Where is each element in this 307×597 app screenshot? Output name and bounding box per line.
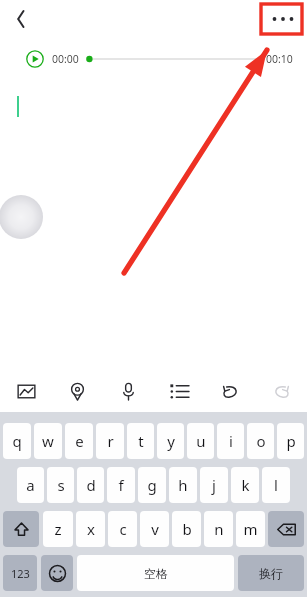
staticText: d [86, 475, 96, 495]
button[interactable]: e [65, 423, 93, 459]
button[interactable]: f [107, 467, 135, 503]
button[interactable]: b [172, 511, 201, 547]
button[interactable]: More options [265, 4, 301, 34]
staticText: u [196, 431, 206, 451]
button[interactable]: Undo [205, 370, 256, 412]
button[interactable]: Play [26, 50, 44, 68]
button[interactable]: Location [52, 370, 103, 412]
button[interactable]: Emoji [41, 555, 73, 591]
button[interactable]: List [154, 370, 205, 412]
button[interactable]: y [157, 423, 184, 459]
button[interactable]: a [17, 467, 44, 503]
staticText: 空格 [144, 566, 168, 581]
button[interactable]: s [47, 467, 74, 503]
staticText: j [212, 475, 216, 495]
staticText: i [229, 431, 233, 451]
button[interactable]: Backspace [268, 511, 304, 547]
staticText: h [178, 475, 188, 495]
button[interactable]: 123 [3, 555, 37, 591]
staticText: c [119, 519, 127, 539]
staticText: p [286, 431, 296, 451]
staticText: l [274, 475, 278, 495]
staticText: s [57, 475, 65, 495]
staticText: v [151, 519, 159, 539]
staticText: a [26, 475, 35, 495]
staticText: k [241, 475, 250, 495]
button[interactable]: j [200, 467, 228, 503]
button[interactable]: h [169, 467, 197, 503]
button[interactable]: Shift [3, 511, 39, 547]
staticText: n [214, 519, 224, 539]
staticText: q [12, 431, 22, 451]
button[interactable]: l [262, 467, 290, 503]
button[interactable]: 换行 [238, 555, 304, 591]
button[interactable]: x [76, 511, 105, 547]
button[interactable]: r [96, 423, 124, 459]
button[interactable]: Redo [256, 370, 307, 412]
staticText: 00:00 [52, 52, 79, 66]
button[interactable]: i [217, 423, 244, 459]
button[interactable]: p [277, 423, 304, 459]
button[interactable]: u [187, 423, 214, 459]
staticText: f [118, 475, 124, 495]
staticText: e [75, 431, 84, 451]
button[interactable]: Insert image [0, 370, 52, 412]
staticText: 123 [11, 566, 30, 581]
button[interactable]: w [34, 423, 62, 459]
staticText: t [138, 431, 144, 451]
staticText: 00:10 [266, 52, 293, 66]
button[interactable]: o [247, 423, 274, 459]
staticText: m [243, 519, 258, 539]
button[interactable]: m [236, 511, 265, 547]
staticText: x [87, 519, 95, 539]
staticText: g [147, 475, 157, 495]
button[interactable]: c [108, 511, 137, 547]
staticText: 换行 [259, 566, 283, 581]
staticText: r [107, 431, 114, 451]
button[interactable]: d [77, 467, 104, 503]
staticText: o [256, 431, 266, 451]
button[interactable]: q [3, 423, 31, 459]
staticText: z [54, 519, 62, 539]
button[interactable]: n [204, 511, 233, 547]
staticText: y [167, 431, 175, 451]
button[interactable]: z [43, 511, 73, 547]
button[interactable]: 空格 [77, 555, 234, 591]
button[interactable]: k [231, 467, 259, 503]
button[interactable]: t [127, 423, 154, 459]
button[interactable]: Back [4, 2, 38, 36]
button[interactable]: Voice input [103, 370, 154, 412]
staticText: w [42, 431, 54, 451]
staticText: b [182, 519, 192, 539]
button[interactable]: g [138, 467, 166, 503]
button[interactable]: v [140, 511, 169, 547]
